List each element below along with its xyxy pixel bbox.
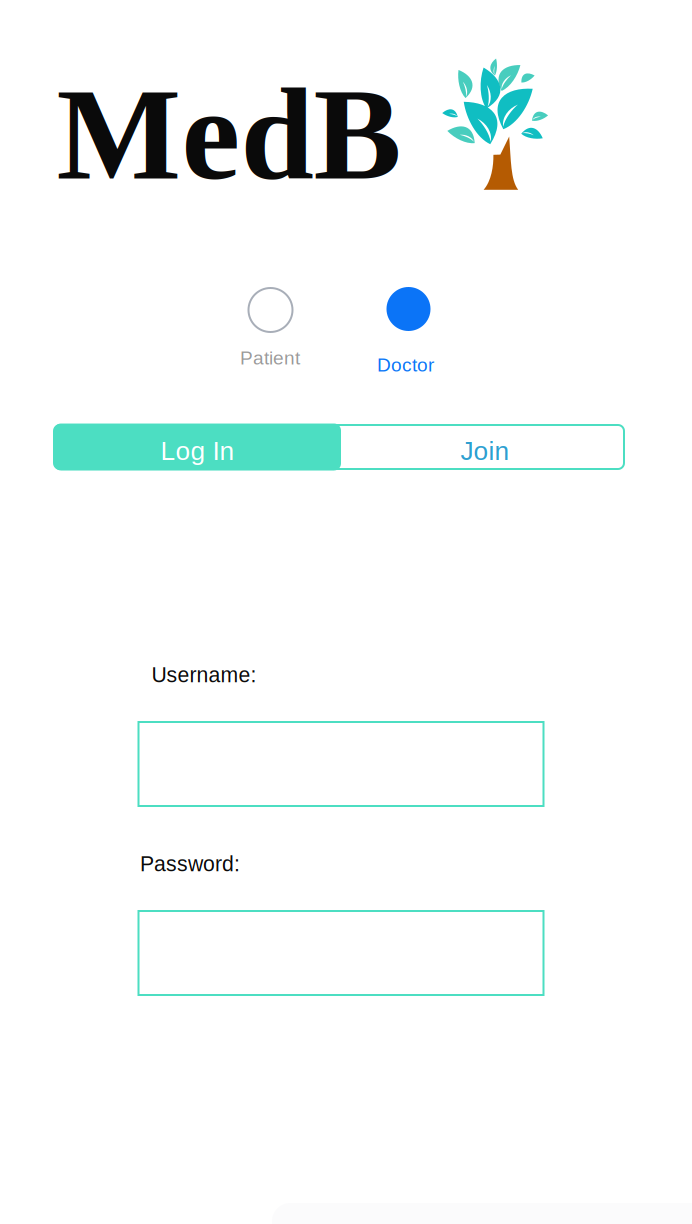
staticText: Username: [151,663,256,687]
button[interactable]: Doctor [386,287,430,331]
button[interactable]: Password field [138,911,543,995]
button[interactable]: Join [344,430,625,472]
staticText: Join [460,436,509,466]
staticText: Doctor [377,354,434,376]
button[interactable]: Patient [240,347,300,369]
staticText: MedB [56,61,401,207]
staticText: Password: [140,852,240,876]
button[interactable]: Doctor [377,354,434,376]
button[interactable]: Log In [54,423,341,470]
staticText: Log In [160,436,234,466]
staticText: Patient [240,347,300,369]
button[interactable]: Patient [248,288,292,332]
button[interactable]: Username field [138,722,543,806]
